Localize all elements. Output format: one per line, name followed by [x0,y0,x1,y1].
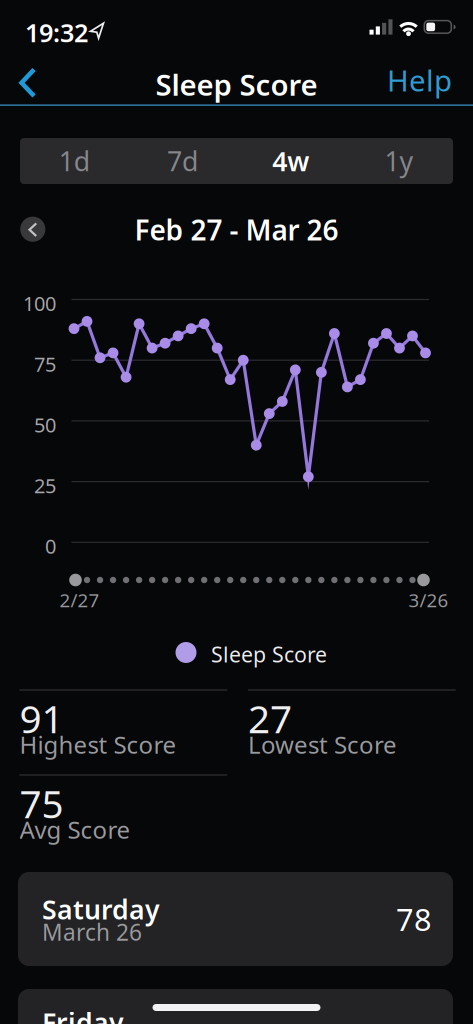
button[interactable]: Friday [18,989,453,1024]
staticText: 25 [34,472,56,499]
staticText: 2/27 [59,587,99,612]
staticText: Help [387,60,452,99]
button[interactable]: 7d [128,138,236,184]
staticText: 1d [59,143,90,179]
button[interactable]: 1y [345,138,453,184]
staticText: March 26 [42,917,142,947]
staticText: Feb 27 - Mar 26 [134,211,338,248]
button[interactable]: 4w [236,138,345,184]
button[interactable]: 1d [20,138,128,184]
staticText: 1y [384,143,413,179]
staticText: 27 [248,692,292,744]
staticText: Highest Score [20,728,177,760]
staticText: Sleep Score [155,65,317,104]
staticText: 7d [167,143,198,179]
button[interactable]: Back [0,54,50,106]
staticText: Sleep Score [211,640,327,668]
staticText: 0 [45,533,56,559]
staticText: Avg Score [20,813,131,845]
staticText: Friday [42,1004,124,1024]
staticText: 50 [34,411,56,438]
staticText: 3/26 [408,587,448,612]
staticText: 19:32 [25,15,88,49]
button[interactable]: Saturday [18,872,453,966]
staticText: Lowest Score [248,728,397,760]
staticText: 91 [20,692,64,744]
staticText: 100 [23,290,56,317]
button[interactable]: Previous period [20,217,45,242]
staticText: Saturday [42,891,160,927]
staticText: 78 [396,899,432,939]
button[interactable]: Help [376,54,452,106]
staticText: 75 [20,777,64,829]
staticText: 4w [272,143,309,179]
staticText: 75 [34,351,56,377]
